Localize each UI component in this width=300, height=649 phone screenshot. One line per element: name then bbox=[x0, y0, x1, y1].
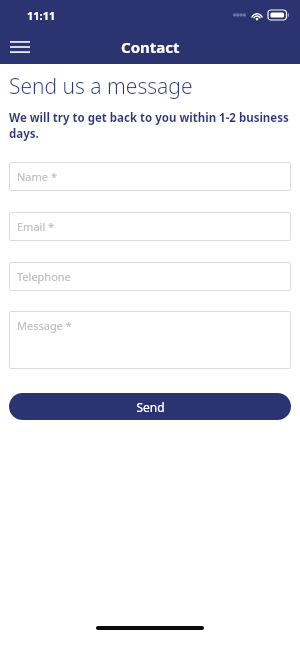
button[interactable]: Message * bbox=[9, 311, 291, 369]
staticText: Message * bbox=[17, 318, 72, 333]
button[interactable]: Email * bbox=[9, 212, 291, 241]
staticText: Contact bbox=[121, 37, 180, 57]
button[interactable]: Telephone bbox=[9, 262, 291, 291]
staticText: Send bbox=[136, 399, 165, 415]
staticText: Email * bbox=[17, 219, 55, 234]
button[interactable]: Name * bbox=[9, 162, 291, 191]
staticText: 11:11 bbox=[27, 8, 56, 23]
staticText: Telephone bbox=[17, 269, 71, 284]
staticText: We will try to get back to you within 1-… bbox=[9, 110, 291, 141]
staticText: Name * bbox=[17, 169, 57, 184]
button[interactable]: Send bbox=[9, 393, 291, 420]
staticText: Send us a message bbox=[9, 72, 193, 101]
button[interactable]: Open navigation menu bbox=[6, 33, 34, 61]
